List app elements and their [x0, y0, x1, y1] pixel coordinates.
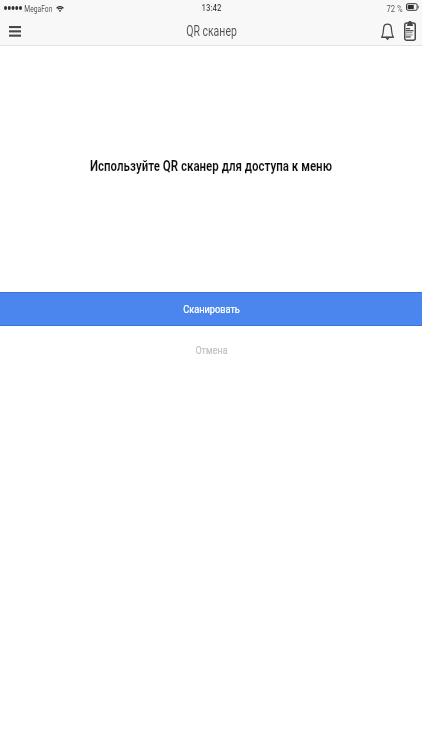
- staticText: MegaFon: [24, 3, 53, 14]
- staticText: QR сканер: [186, 23, 237, 40]
- staticText: Используйте QR сканер для доступа к меню: [90, 157, 332, 175]
- button[interactable]: Notifications: [374, 18, 400, 45]
- staticText: Сканировать: [183, 302, 240, 316]
- staticText: Отмена: [195, 344, 228, 357]
- staticText: 72 %: [386, 3, 403, 14]
- button[interactable]: Orders: [398, 17, 422, 44]
- button[interactable]: Отмена: [0, 333, 422, 367]
- button[interactable]: Menu: [0, 18, 29, 46]
- staticText: 13:42: [201, 2, 221, 13]
- button[interactable]: Сканировать: [0, 292, 422, 326]
